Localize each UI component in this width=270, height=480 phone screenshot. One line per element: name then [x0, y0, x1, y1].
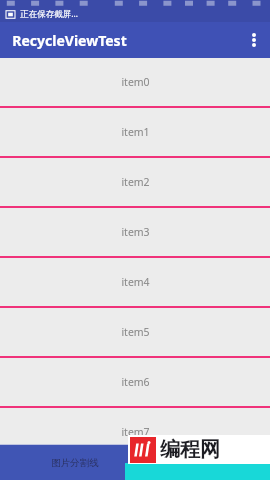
staticText: 正在保存截屏… — [20, 8, 78, 20]
staticText: RecycleViewTest — [12, 31, 127, 50]
staticText: item0 — [121, 75, 150, 89]
button[interactable]: item2 — [0, 158, 270, 206]
staticText: item8 — [121, 462, 150, 476]
button[interactable]: More options — [238, 22, 270, 58]
button[interactable]: item6 — [0, 358, 270, 406]
staticText: item4 — [121, 275, 150, 289]
button[interactable]: item4 — [0, 258, 270, 306]
button[interactable]: 图片分割线 — [0, 445, 270, 480]
button[interactable]: item1 — [0, 108, 270, 156]
staticText: 图片分割线 — [51, 457, 99, 469]
button[interactable]: item8 — [0, 458, 270, 480]
staticText: item5 — [121, 325, 150, 339]
staticText: item2 — [121, 175, 150, 189]
staticText: item6 — [121, 375, 150, 389]
button[interactable]: item5 — [0, 308, 270, 356]
staticText: 编程网 — [160, 437, 220, 462]
button[interactable]: item3 — [0, 208, 270, 256]
staticText: item1 — [121, 125, 150, 139]
staticText: item7 — [121, 425, 150, 439]
button[interactable]: item0 — [0, 58, 270, 106]
button[interactable]: item7 — [0, 408, 270, 456]
staticText: item3 — [121, 225, 150, 239]
